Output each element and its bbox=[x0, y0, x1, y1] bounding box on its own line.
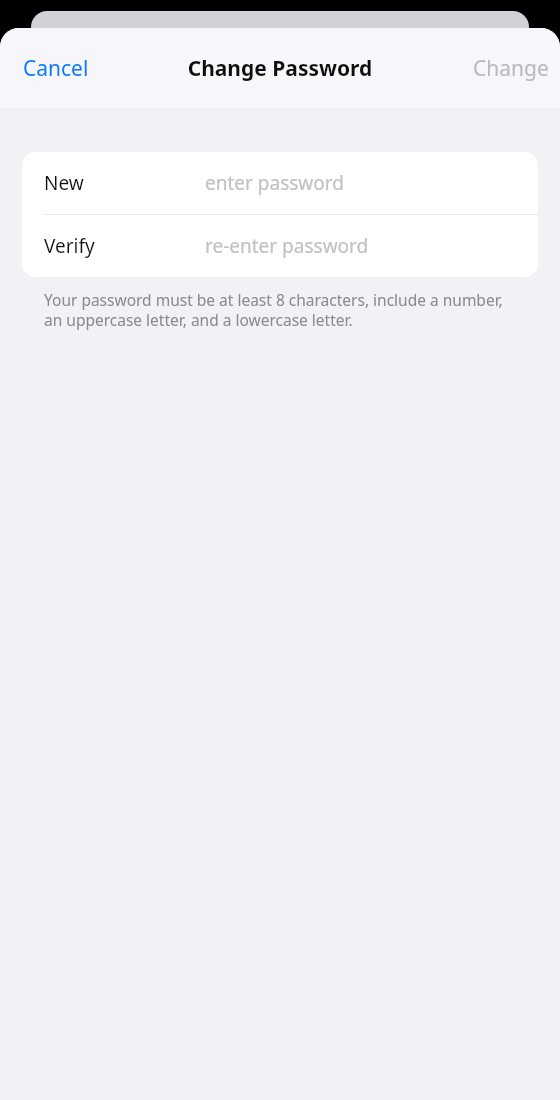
staticText: Change Password bbox=[0, 54, 560, 83]
staticText: Your password must be at least 8 charact… bbox=[44, 289, 516, 331]
staticText: Verify bbox=[44, 233, 95, 259]
staticText: enter password bbox=[205, 170, 344, 196]
staticText: New bbox=[44, 170, 84, 196]
button[interactable]: Verify bbox=[22, 215, 538, 277]
staticText: re-enter password bbox=[205, 233, 369, 259]
staticText: Cancel bbox=[23, 54, 89, 83]
button[interactable]: Cancel bbox=[0, 38, 112, 99]
button[interactable]: New bbox=[22, 152, 538, 214]
button[interactable]: Change bbox=[462, 38, 560, 99]
staticText: Change bbox=[473, 54, 549, 83]
